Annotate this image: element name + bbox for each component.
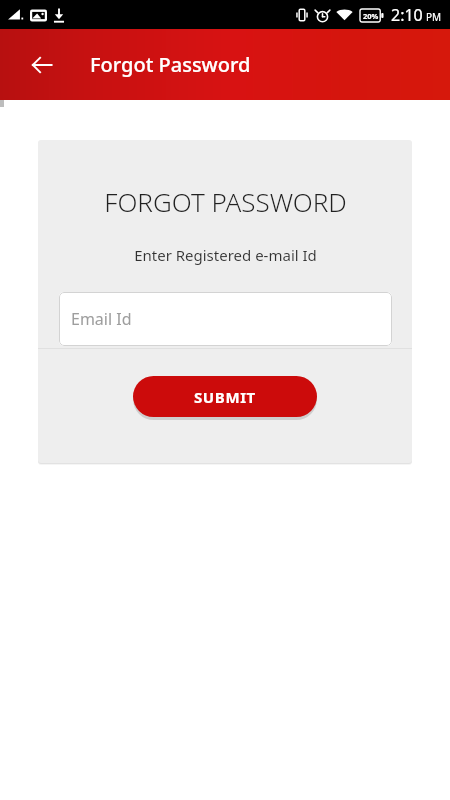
button[interactable]: SUBMIT — [133, 376, 317, 417]
staticText: SUBMIT — [194, 387, 256, 407]
staticText: PM — [426, 10, 442, 24]
staticText: FORGOT PASSWORD — [104, 184, 347, 219]
button[interactable]: Back — [18, 41, 66, 89]
button[interactable]: Email Id — [59, 292, 392, 346]
staticText: Forgot Password — [90, 51, 251, 78]
staticText: 2:10 — [391, 4, 423, 26]
staticText: Email Id — [71, 308, 132, 330]
staticText: 20% — [363, 11, 379, 21]
staticText: Enter Registered e-mail Id — [134, 245, 317, 265]
